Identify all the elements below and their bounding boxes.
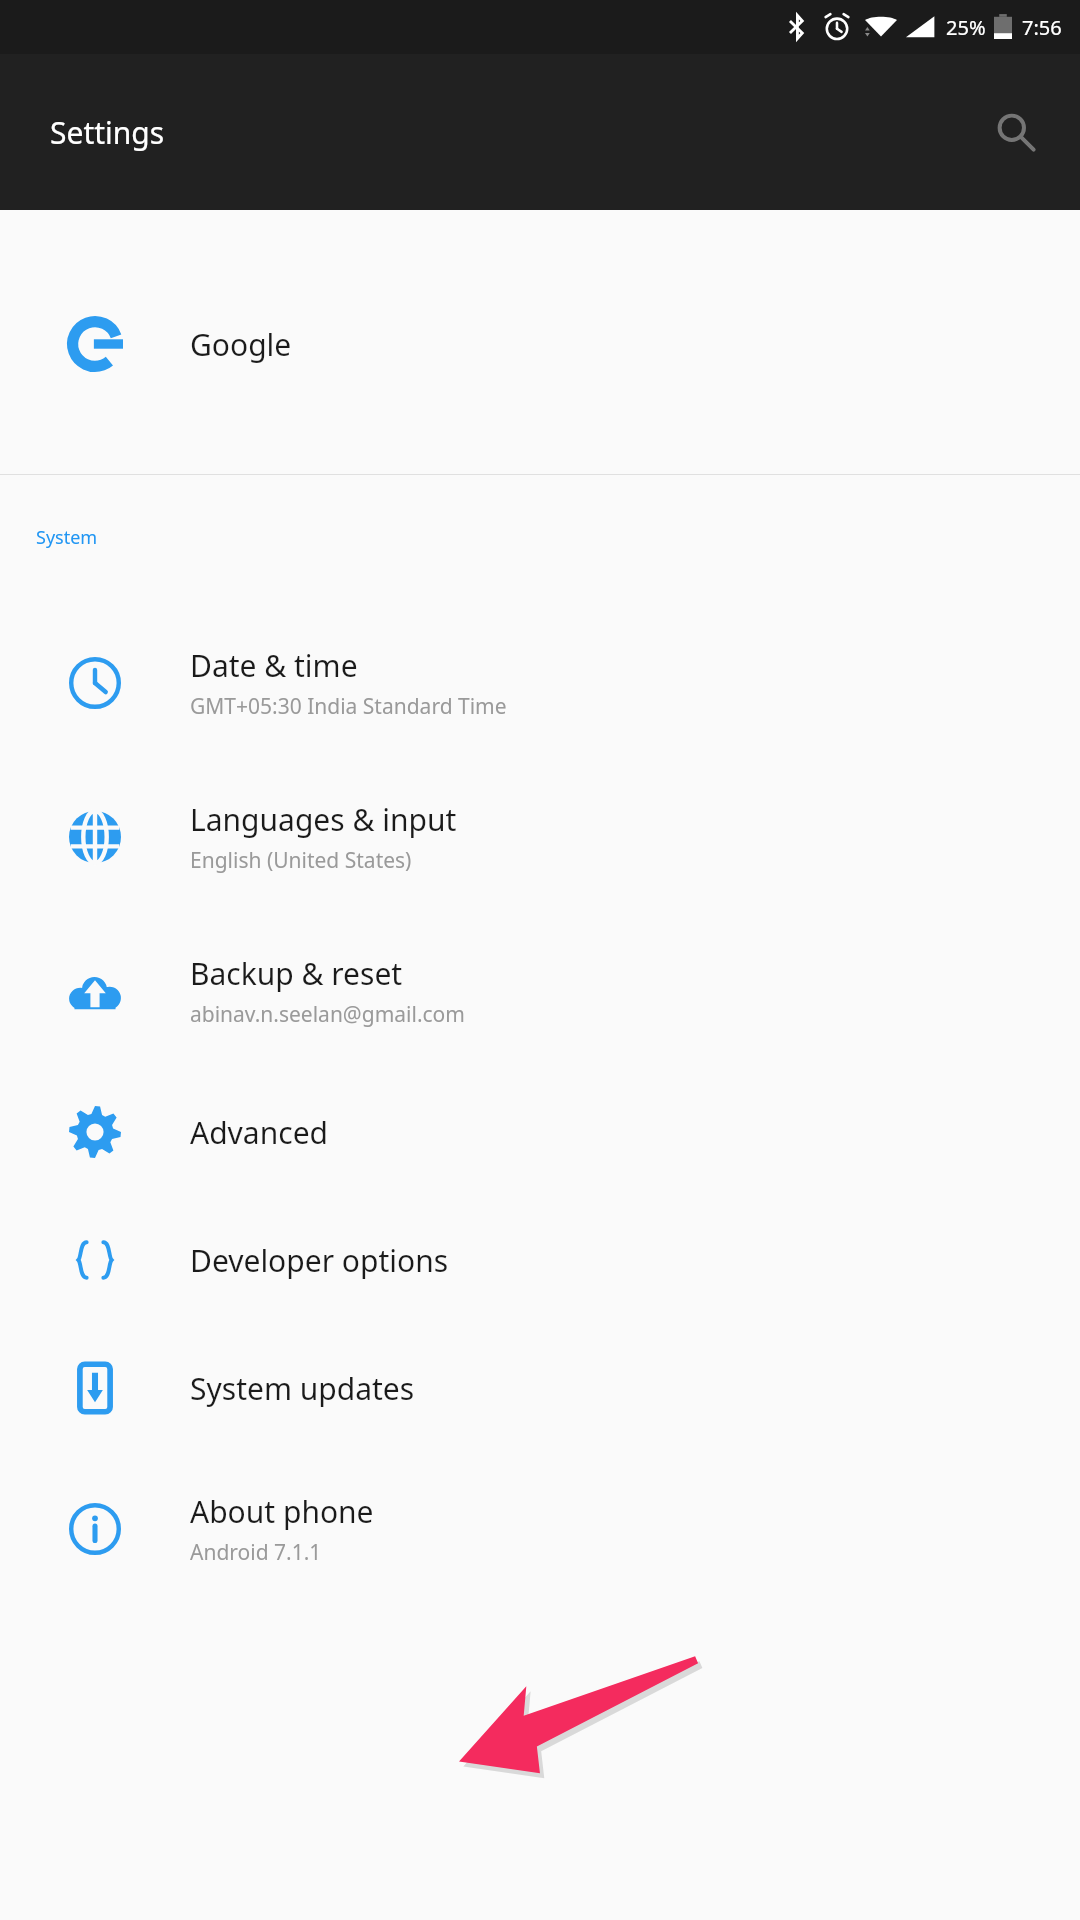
button[interactable]: Developer options [0,1214,1080,1306]
button[interactable]: Languages & input [0,778,1080,896]
staticText: Developer options [190,1240,449,1281]
staticText: English (United States) [190,846,412,875]
staticText: Advanced [190,1112,328,1153]
staticText: Settings [50,112,165,153]
staticText: About phone [190,1491,374,1532]
staticText: Date & time [190,645,358,686]
staticText: 25% [946,14,986,41]
staticText: Google [190,324,292,365]
staticText: Android 7.1.1 [190,1538,322,1567]
staticText: System [36,525,98,550]
staticText: 7:56 [1022,14,1062,41]
staticText: Backup & reset [190,953,403,994]
button[interactable]: Google [0,298,1080,390]
button[interactable]: Search [980,96,1052,168]
staticText: GMT+05:30 India Standard Time [190,692,507,721]
button[interactable]: System updates [0,1342,1080,1434]
staticText: abinav.n.seelan@gmail.com [190,1000,465,1029]
button[interactable]: Advanced [0,1086,1080,1178]
staticText: System updates [190,1368,415,1409]
button[interactable]: Date & time [0,624,1080,742]
button[interactable]: About phone [0,1470,1080,1588]
staticText: Languages & input [190,799,457,840]
button[interactable]: Backup & reset [0,932,1080,1050]
